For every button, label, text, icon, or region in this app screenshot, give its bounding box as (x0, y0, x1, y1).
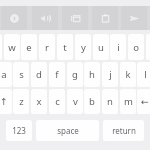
button[interactable]: s (13, 62, 29, 87)
staticText: r (45, 41, 49, 54)
staticText: i (117, 41, 120, 54)
staticText: z (19, 95, 24, 108)
staticText: k (125, 68, 131, 81)
button[interactable]: 123 (6, 120, 32, 141)
staticText: e (26, 41, 32, 54)
button[interactable]: t (57, 34, 73, 60)
staticText: return (112, 125, 136, 136)
button[interactable]: f (49, 62, 65, 87)
staticText: a (1, 68, 7, 81)
button[interactable]: k (120, 62, 136, 87)
staticText: n (107, 95, 113, 108)
button[interactable]: return (103, 120, 144, 141)
button[interactable]: c (49, 89, 65, 114)
staticText: ↑ (0, 96, 8, 107)
staticText: m (124, 95, 133, 108)
staticText: y (81, 41, 86, 54)
button[interactable]: l (137, 62, 150, 87)
staticText: l (144, 68, 147, 81)
button[interactable]: Voice input (1, 6, 27, 30)
staticText: j (109, 68, 112, 81)
button[interactable]: e (21, 34, 37, 60)
button[interactable]: u (93, 34, 109, 60)
staticText: w (8, 41, 16, 54)
staticText: 123 (12, 125, 26, 136)
button[interactable]: ← (137, 89, 150, 114)
staticText: ← (141, 96, 149, 107)
button[interactable]: n (102, 89, 118, 114)
staticText: space (57, 125, 79, 136)
staticText: f (55, 68, 59, 81)
staticText: v (73, 95, 78, 108)
button[interactable]: z (13, 89, 29, 114)
button[interactable]: b (84, 89, 100, 114)
button[interactable]: Send (121, 6, 147, 30)
staticText: x (36, 95, 42, 108)
staticText: h (89, 68, 95, 81)
staticText: u (98, 41, 104, 54)
button[interactable]: space (36, 120, 99, 141)
button[interactable]: h (84, 62, 100, 87)
button[interactable]: d (31, 62, 47, 87)
button[interactable]: o (128, 34, 144, 60)
button[interactable]: Translate (62, 6, 88, 30)
staticText: g (72, 68, 78, 81)
button[interactable]: Paste (92, 6, 118, 30)
button[interactable]: Sound (32, 6, 58, 30)
staticText: t (63, 41, 67, 54)
button[interactable]: i (110, 34, 126, 60)
button[interactable]: ↑ (0, 89, 12, 114)
button[interactable]: a (0, 62, 12, 87)
button[interactable]: y (75, 34, 91, 60)
button[interactable]: m (120, 89, 136, 114)
staticText: o (133, 41, 139, 54)
button[interactable]: w (4, 34, 20, 60)
button[interactable]: x (31, 89, 47, 114)
staticText: s (19, 68, 24, 81)
staticText: b (89, 95, 95, 108)
button[interactable]: r (39, 34, 55, 60)
button[interactable]: j (102, 62, 118, 87)
staticText: c (55, 95, 60, 108)
staticText: d (36, 68, 42, 81)
button[interactable]: v (67, 89, 83, 114)
button[interactable]: g (67, 62, 83, 87)
